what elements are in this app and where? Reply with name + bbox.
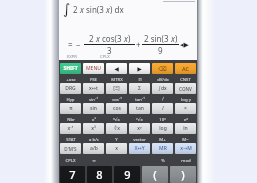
button[interactable]: ( bbox=[142, 166, 168, 183]
button[interactable]: 8 bbox=[87, 166, 112, 183]
button[interactable]: MENU bbox=[83, 63, 104, 74]
staticText: Hyp bbox=[66, 96, 75, 102]
button[interactable]: a/b bbox=[83, 143, 104, 154]
button[interactable]: x³ bbox=[83, 123, 104, 134]
staticText: STAT bbox=[66, 136, 76, 142]
button[interactable]: 7 bbox=[60, 166, 85, 183]
button[interactable]: CONV bbox=[175, 83, 196, 94]
staticText: CNST bbox=[180, 76, 191, 82]
button[interactable]: ∫dx bbox=[152, 83, 173, 94]
staticText: ) dx bbox=[110, 4, 124, 15]
staticText: a b/c bbox=[89, 136, 99, 142]
button[interactable]: × bbox=[175, 103, 196, 114]
staticText: sin⁻¹ bbox=[89, 96, 98, 102]
staticText: EXPR bbox=[67, 54, 77, 60]
staticText: sin bbox=[90, 105, 97, 112]
button[interactable]: MR bbox=[152, 143, 173, 154]
button[interactable]: cos bbox=[106, 103, 127, 114]
staticText: Π bbox=[138, 76, 142, 82]
staticText: 10ˣ bbox=[159, 116, 166, 122]
staticText: × bbox=[184, 105, 187, 112]
staticText: mod bbox=[181, 157, 191, 163]
staticText: CONV bbox=[179, 86, 192, 92]
staticText: − bbox=[76, 39, 81, 50]
staticText: ◀ bbox=[114, 65, 119, 72]
button[interactable]: log bbox=[152, 123, 173, 134]
staticText: M+ bbox=[159, 136, 166, 142]
staticText: % bbox=[161, 157, 165, 163]
staticText: ▶ bbox=[137, 65, 142, 72]
staticText: MR bbox=[159, 145, 167, 152]
staticText: Y bbox=[115, 136, 118, 142]
staticText: log bbox=[159, 125, 167, 132]
staticText: 2 bbox=[73, 4, 80, 15]
button[interactable]: ) bbox=[170, 166, 196, 183]
button[interactable]: / bbox=[152, 103, 173, 114]
staticText: ) bbox=[175, 33, 178, 44]
staticText: ◂▶ bbox=[180, 41, 189, 49]
staticText: cos⁻¹ bbox=[112, 96, 122, 102]
staticText: eˣ bbox=[184, 116, 188, 122]
staticText: x bbox=[80, 4, 86, 15]
button[interactable]: tan bbox=[129, 103, 150, 114]
staticText: x bbox=[96, 33, 102, 44]
staticText: tan⁻¹ bbox=[135, 96, 145, 102]
staticText: ⌫ bbox=[158, 65, 167, 72]
staticText: 7 bbox=[69, 167, 76, 182]
staticText: CPLX bbox=[100, 54, 110, 60]
staticText: vector bbox=[133, 136, 146, 142]
button[interactable]: x⁻¹ bbox=[60, 123, 81, 134]
staticText: π bbox=[69, 105, 73, 112]
button[interactable]: x→M bbox=[175, 143, 196, 154]
button[interactable]: AC bbox=[175, 63, 196, 74]
staticText: = bbox=[68, 39, 73, 50]
staticText: cos bbox=[113, 105, 121, 112]
staticText: ∛x bbox=[114, 125, 120, 132]
staticText: ( bbox=[153, 167, 157, 182]
staticText: Nbr bbox=[67, 116, 75, 122]
button[interactable]: X↔Y bbox=[129, 143, 150, 154]
button[interactable]: D'M'S bbox=[60, 143, 81, 154]
staticText: AC bbox=[182, 65, 189, 72]
staticText: ∞ bbox=[92, 158, 96, 163]
staticText: [Ξ] bbox=[113, 85, 120, 92]
staticText: ∫ bbox=[63, 1, 71, 17]
staticText: DRG bbox=[65, 85, 76, 92]
staticText: ∕ bbox=[162, 96, 164, 101]
staticText: MENU bbox=[86, 65, 101, 72]
staticText: ⁿ√x bbox=[113, 116, 120, 122]
staticText: M− bbox=[182, 136, 189, 142]
staticText: D'M'S bbox=[64, 146, 77, 152]
staticText: / bbox=[162, 105, 164, 112]
button[interactable]: ∛x bbox=[106, 123, 127, 134]
staticText: ʸ√x bbox=[136, 116, 143, 122]
button[interactable]: ▶ bbox=[129, 63, 150, 74]
staticText: FSE bbox=[90, 76, 97, 82]
staticText: sin(3 bbox=[86, 4, 106, 15]
staticText: log y bbox=[181, 96, 191, 102]
button[interactable]: Σ bbox=[129, 83, 150, 94]
staticText: Σ bbox=[138, 85, 141, 92]
button[interactable]: π bbox=[60, 103, 81, 114]
staticText: cos(3 bbox=[102, 33, 124, 44]
staticText: x bbox=[124, 33, 128, 44]
button[interactable]: sin bbox=[83, 103, 104, 114]
staticText: x↔t bbox=[89, 85, 98, 92]
button[interactable]: 9 bbox=[114, 166, 140, 183]
button[interactable]: x bbox=[106, 143, 127, 154]
staticText: +osc bbox=[66, 76, 76, 82]
staticText: 3 bbox=[107, 45, 112, 56]
button[interactable]: ⌫ bbox=[152, 63, 173, 74]
staticText: CPLX bbox=[65, 157, 76, 163]
button[interactable]: x↔t bbox=[83, 83, 104, 94]
button[interactable]: DRG bbox=[60, 83, 81, 94]
staticText: 9 bbox=[124, 167, 131, 182]
staticText: 9 bbox=[158, 45, 163, 56]
button[interactable]: [Ξ] bbox=[106, 83, 127, 94]
button[interactable]: ln bbox=[175, 123, 196, 134]
button[interactable]: xʸ bbox=[129, 123, 150, 134]
button[interactable]: ◀ bbox=[106, 63, 127, 74]
staticText: dV/dx bbox=[157, 76, 169, 82]
staticText: SHIFT bbox=[63, 65, 78, 72]
button[interactable]: SHIFT bbox=[60, 63, 81, 74]
